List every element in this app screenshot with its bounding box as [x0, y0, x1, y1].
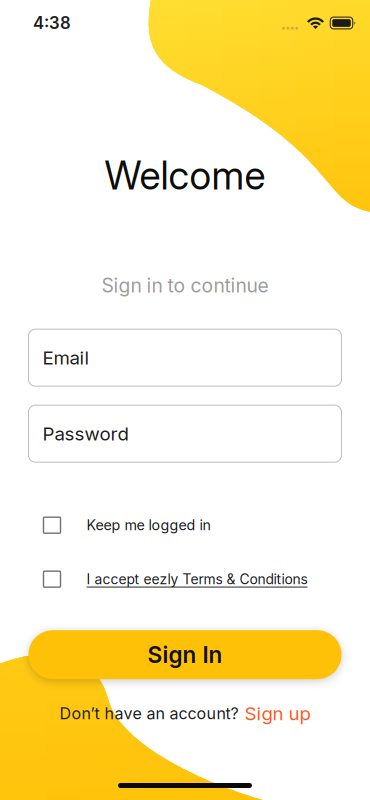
staticText: Welcome: [104, 152, 265, 199]
button[interactable]: Email: [28, 329, 341, 386]
button[interactable]: Password: [28, 405, 341, 462]
staticText: Sign In: [147, 641, 222, 668]
staticText: Sign in to continue: [101, 274, 268, 297]
staticText: Email: [42, 346, 89, 369]
button[interactable]: Sign up: [244, 702, 310, 725]
staticText: Sign up: [244, 702, 310, 725]
staticText: I accept eezly Terms & Conditions: [86, 571, 307, 588]
staticText: Password: [42, 422, 128, 445]
button[interactable]: I accept eezly Terms & Conditions: [28, 568, 341, 590]
button[interactable]: Keep me logged in: [28, 514, 341, 536]
staticText: 4:38: [33, 13, 71, 33]
button[interactable]: Sign In: [28, 630, 341, 679]
staticText: Keep me logged in: [86, 516, 210, 534]
staticText: Don’t have an account?: [59, 704, 238, 723]
